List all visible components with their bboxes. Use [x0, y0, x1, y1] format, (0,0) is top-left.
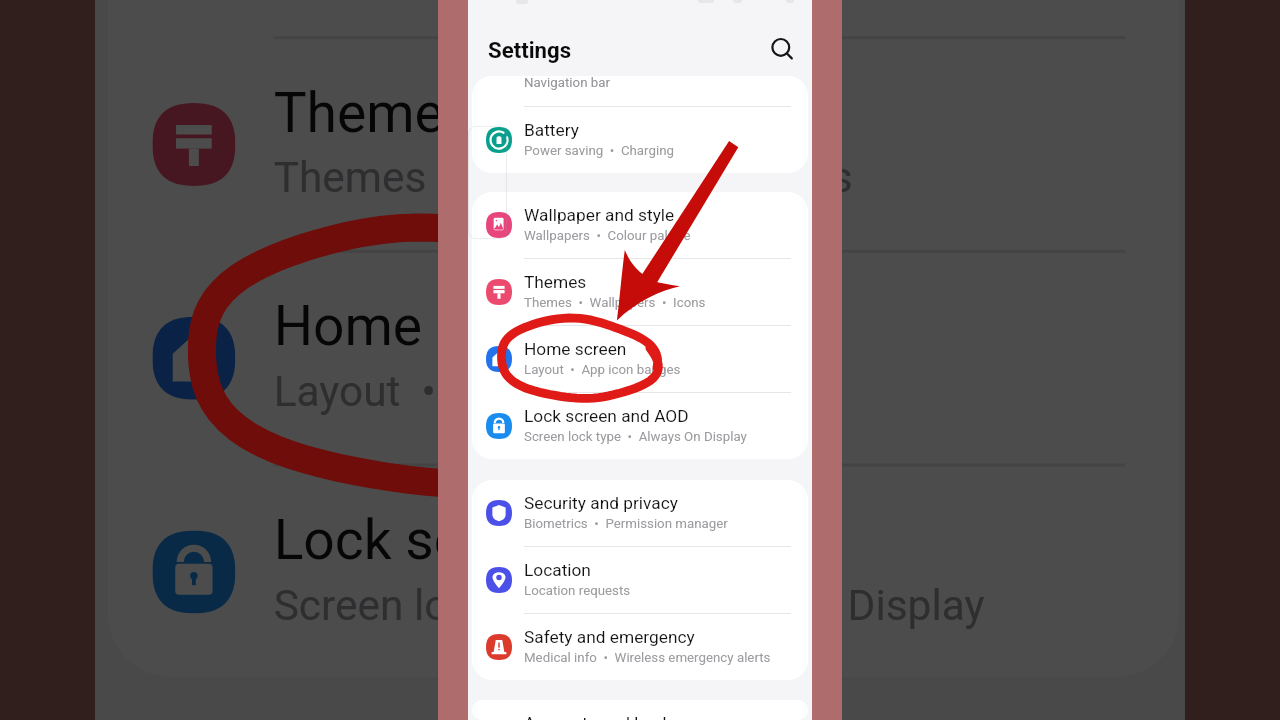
button[interactable]: Wallpaper and style	[472, 192, 808, 258]
button[interactable]: Search	[764, 31, 800, 67]
button[interactable]: Lock screen and AOD	[108, 467, 1180, 677]
button[interactable]: Battery	[472, 107, 808, 173]
staticText: Biometrics • Permission manager	[524, 516, 728, 532]
staticText: Navigation bar	[524, 76, 611, 91]
staticText: Layout • App icon badges	[524, 362, 681, 378]
button[interactable]: Wallpaper and style	[108, 0, 1180, 36]
button[interactable]: Home screen	[472, 326, 808, 392]
staticText: Safety and emergency	[524, 627, 695, 647]
staticText: Battery	[524, 120, 579, 140]
button[interactable]: Home screen	[108, 253, 1180, 463]
staticText: Themes	[274, 81, 475, 144]
staticText: Home screen	[274, 294, 602, 358]
button[interactable]: Themes	[472, 259, 808, 325]
button[interactable]: Safety and emergency	[472, 614, 808, 680]
staticText: Home screen	[524, 339, 627, 359]
staticText: Medical info • Wireless emergency alerts	[524, 650, 771, 666]
staticText: Location	[524, 560, 591, 580]
staticText: Security and privacy	[524, 493, 678, 513]
staticText: Screen lock type • Always On Display	[274, 581, 985, 632]
staticText: Themes • Wallpapers • Icons	[274, 154, 854, 205]
button[interactable]: Lock screen and AOD	[472, 393, 808, 459]
button[interactable]: Security and privacy	[472, 480, 808, 546]
staticText: Themes • Wallpapers • Icons	[524, 295, 706, 311]
staticText: Themes	[524, 272, 587, 292]
staticText: Lock screen and AOD	[274, 508, 800, 572]
button[interactable]: Location	[472, 547, 808, 613]
staticText: Lock screen and AOD	[524, 406, 689, 426]
button[interactable]: Themes	[108, 39, 1180, 250]
staticText: Power saving • Charging	[524, 143, 674, 159]
staticText: Accounts and backup	[524, 713, 691, 720]
staticText: Wallpaper and style	[524, 205, 675, 225]
staticText: Settings	[488, 37, 572, 63]
staticText: Wallpapers • Colour palette	[524, 228, 691, 244]
staticText: Layout • App icon badges	[274, 368, 774, 419]
staticText: Screen lock type • Always On Display	[524, 429, 747, 445]
staticText: Location requests	[524, 583, 631, 599]
button[interactable]: Accounts and backup	[472, 700, 808, 720]
